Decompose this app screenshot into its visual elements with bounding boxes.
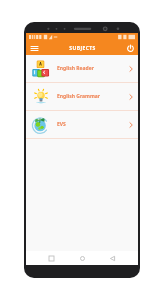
button[interactable]: Home [77, 253, 88, 264]
button[interactable]: Log out [125, 43, 135, 53]
staticText: English Reader [57, 65, 128, 72]
button[interactable]: English Grammar [26, 83, 138, 110]
staticText: EVS [57, 121, 128, 128]
button[interactable]: Back [107, 253, 118, 264]
button[interactable]: EVS [26, 111, 138, 138]
staticText: English Grammar [57, 93, 128, 100]
button[interactable]: Open navigation menu [29, 43, 39, 53]
button[interactable]: English Reader [26, 55, 138, 82]
staticText: SUBJECTS [69, 45, 96, 52]
button[interactable]: Recent apps [46, 253, 57, 264]
